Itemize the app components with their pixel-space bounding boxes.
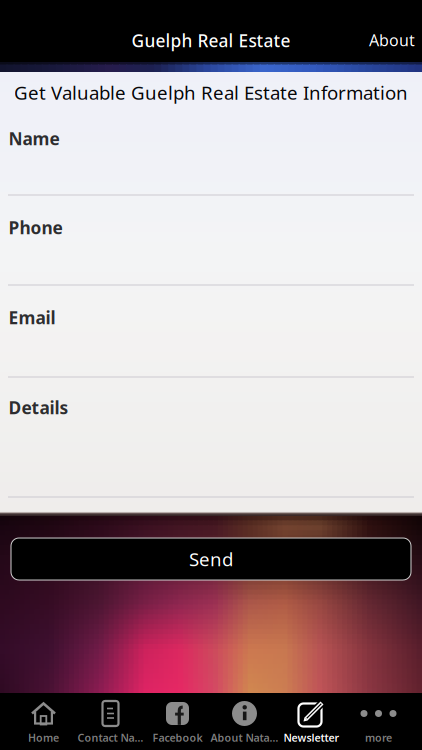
button[interactable]: About Nata…	[211, 696, 278, 748]
staticText: more	[365, 730, 392, 745]
staticText: Send	[189, 547, 233, 571]
button[interactable]: Send	[11, 538, 411, 580]
button[interactable]: Facebook	[144, 696, 211, 748]
staticText: Details	[8, 396, 68, 419]
button[interactable]: About	[362, 22, 422, 58]
staticText: Home	[28, 730, 59, 745]
button[interactable]: more	[345, 696, 412, 748]
staticText: Phone	[8, 216, 62, 239]
staticText: Newsletter	[283, 730, 339, 745]
staticText: Contact Na…	[77, 730, 143, 745]
button[interactable]: Contact Na…	[77, 696, 144, 748]
staticText: Email	[8, 306, 55, 329]
staticText: About	[369, 29, 415, 51]
button[interactable]: Newsletter	[278, 696, 345, 748]
staticText: About Nata…	[210, 730, 278, 745]
button[interactable]: Home	[10, 696, 77, 748]
staticText: Guelph Real Estate	[131, 29, 290, 52]
staticText: Facebook	[152, 730, 202, 745]
staticText: Get Valuable Guelph Real Estate Informat…	[14, 80, 408, 105]
staticText: Name	[8, 127, 59, 150]
